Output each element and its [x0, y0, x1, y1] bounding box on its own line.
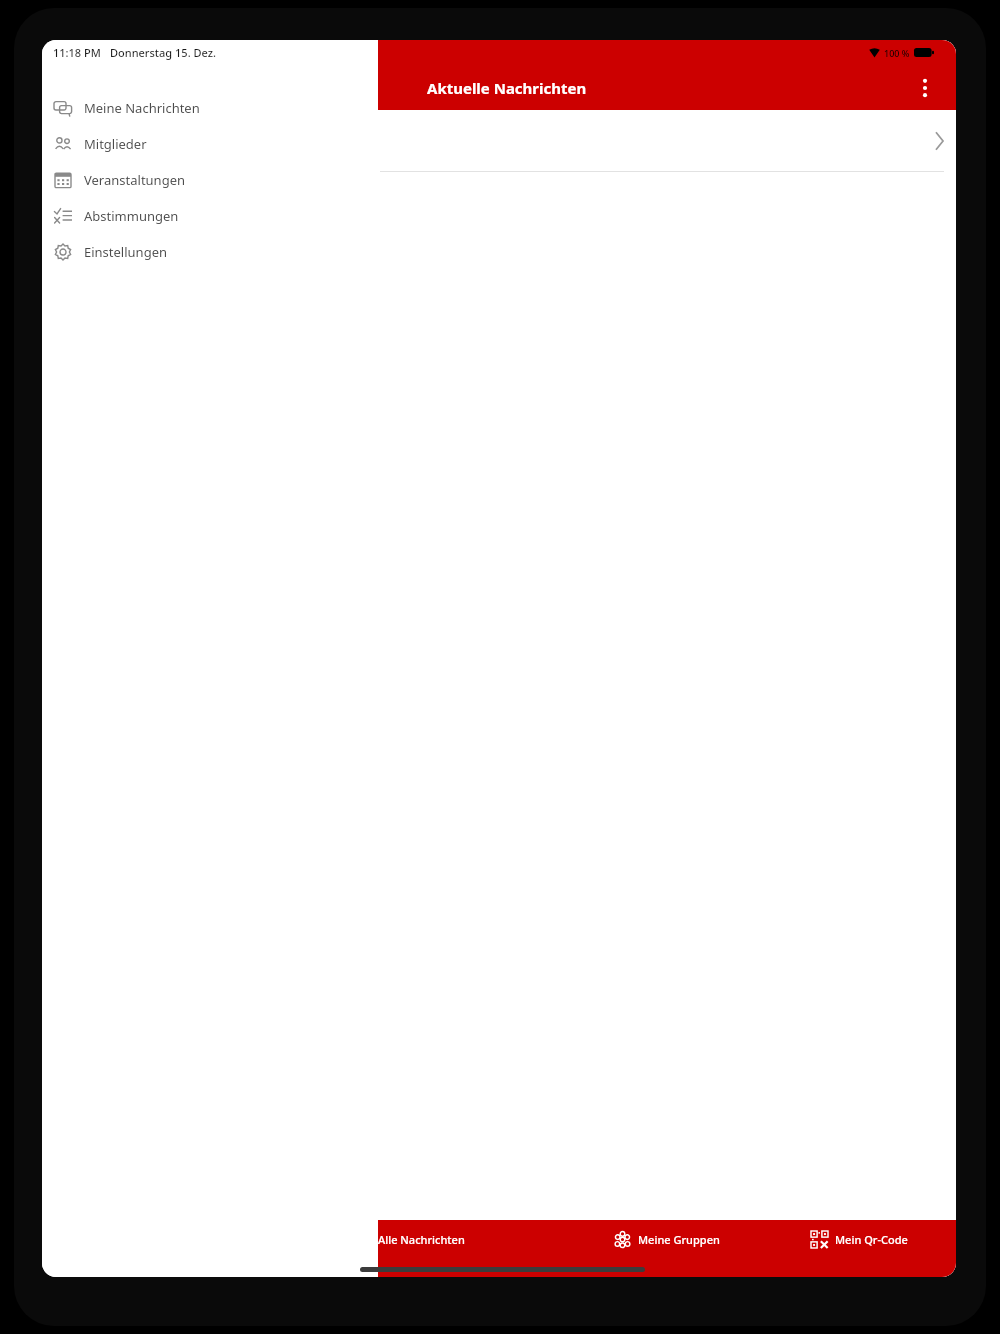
button[interactable]: Alle Nachrichten	[378, 1220, 570, 1258]
staticText: Mitglieder	[84, 135, 147, 153]
staticText: Aktuelle Nachrichten	[427, 78, 587, 98]
button[interactable]: Einstellungen	[42, 234, 378, 270]
staticText: Alle Nachrichten	[378, 1232, 465, 1247]
staticText: 100 %	[884, 47, 910, 59]
staticText: Mein Qr-Code	[835, 1232, 908, 1247]
staticText: Meine Nachrichten	[84, 99, 200, 117]
staticText: Veranstaltungen	[84, 171, 185, 189]
button[interactable]: Meine Gruppen	[570, 1220, 763, 1258]
button[interactable]: Mein Qr-Code	[763, 1220, 956, 1258]
button[interactable]: Mitglieder	[42, 126, 378, 162]
button[interactable]: Abstimmungen	[42, 198, 378, 234]
staticText: Abstimmungen	[84, 207, 179, 225]
button[interactable]: Veranstaltungen	[42, 162, 378, 198]
staticText: Meine Gruppen	[638, 1232, 720, 1247]
staticText: Einstellungen	[84, 243, 168, 261]
staticText: Donnerstag 15. Dez.	[110, 45, 216, 60]
button[interactable]: Meine Nachrichten	[42, 90, 378, 126]
staticText: 11:18 PM	[53, 45, 101, 60]
button[interactable]	[378, 110, 956, 172]
button[interactable]: Weitere Optionen	[908, 71, 942, 105]
